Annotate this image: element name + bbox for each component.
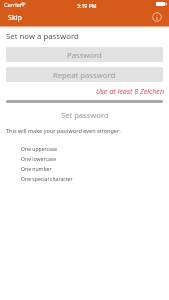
staticText: Carrier xyxy=(4,1,23,9)
staticText: Password xyxy=(67,50,102,60)
button[interactable]: Info xyxy=(152,12,162,22)
staticText: Set now a password xyxy=(6,31,79,42)
staticText: One uppercase xyxy=(21,146,58,153)
staticText: Set password xyxy=(61,110,109,120)
staticText: One special character xyxy=(21,176,73,183)
staticText: One number xyxy=(21,166,52,173)
staticText: 3:19 PM xyxy=(77,2,97,9)
button[interactable]: Set password xyxy=(0,110,169,120)
staticText: Skip xyxy=(8,12,22,22)
staticText: One lowercase xyxy=(21,156,57,163)
staticText: This will make your password even strong… xyxy=(6,127,121,134)
button[interactable]: Password xyxy=(6,47,163,62)
button[interactable]: Repeat password xyxy=(6,67,163,82)
staticText: Repeat password xyxy=(53,70,116,80)
staticText: Use at least 8 Zeichen xyxy=(96,86,164,96)
button[interactable]: Skip xyxy=(8,12,22,22)
